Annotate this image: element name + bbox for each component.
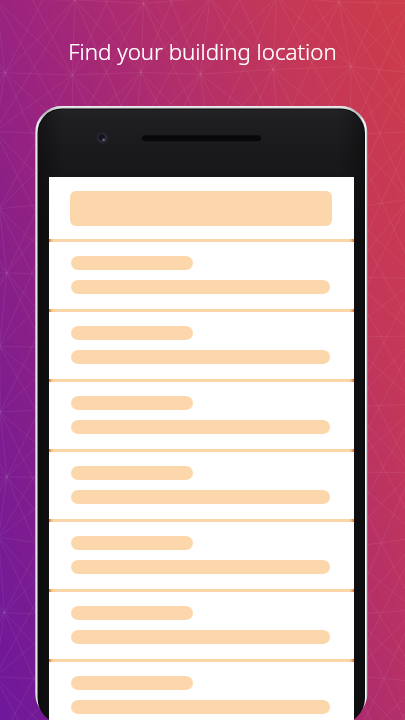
staticText: Find your building location — [0, 36, 405, 66]
button[interactable] — [49, 177, 354, 239]
button[interactable] — [49, 592, 354, 659]
button[interactable] — [49, 522, 354, 589]
button[interactable] — [49, 452, 354, 519]
button[interactable] — [49, 662, 354, 720]
button[interactable] — [49, 312, 354, 379]
button[interactable] — [49, 242, 354, 309]
button[interactable] — [49, 382, 354, 449]
